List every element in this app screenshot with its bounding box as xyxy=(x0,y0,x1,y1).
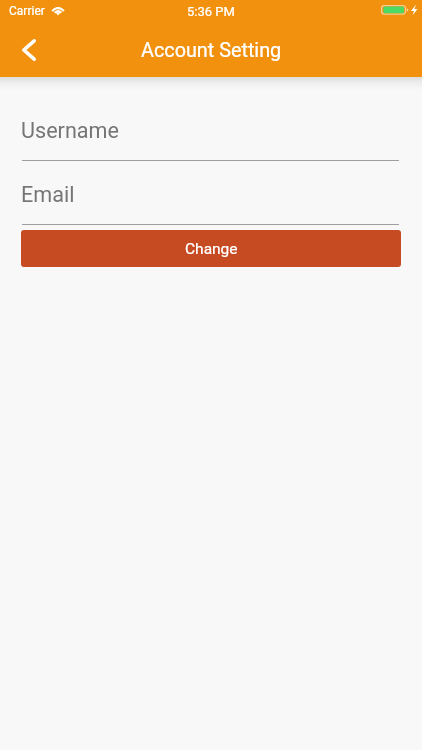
button[interactable]: Username xyxy=(21,117,401,161)
other: Wi-Fi signal xyxy=(49,2,67,18)
button[interactable]: Email xyxy=(21,181,401,225)
staticText: Username xyxy=(21,118,119,143)
staticText: 5:36 PM xyxy=(187,4,235,19)
staticText: Account Setting xyxy=(141,39,282,62)
staticText: Carrier xyxy=(9,4,45,18)
staticText: Change xyxy=(185,240,238,258)
other: Battery charging xyxy=(381,5,418,16)
button[interactable]: Back xyxy=(6,24,52,74)
staticText: Email xyxy=(21,182,75,207)
button[interactable]: Change xyxy=(21,230,401,267)
